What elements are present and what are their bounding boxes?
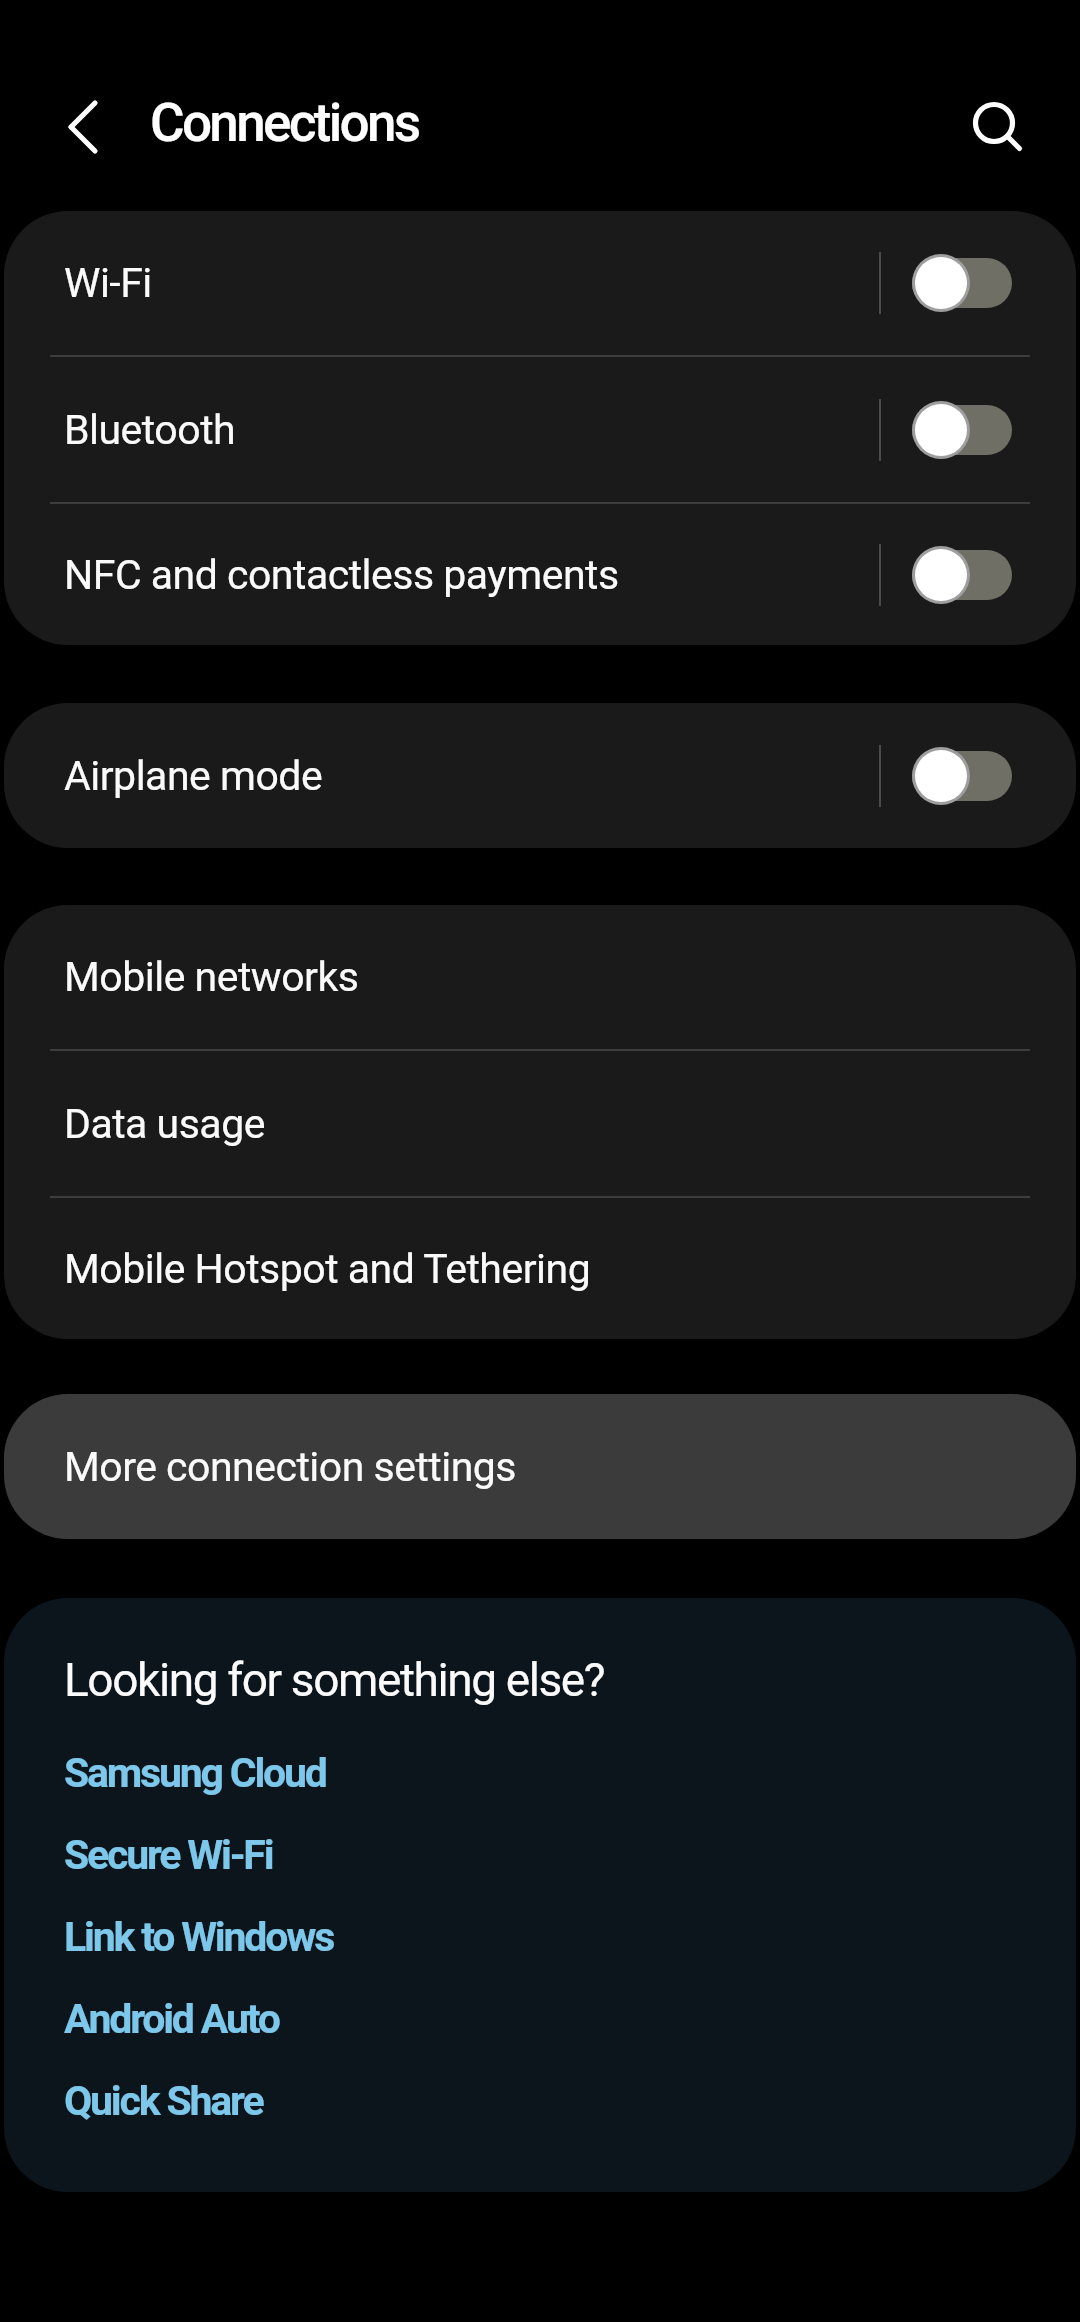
- button[interactable]: NFC and contactless payments: [4, 504, 1076, 645]
- staticText: Bluetooth: [64, 406, 236, 454]
- staticText: More connection settings: [64, 1443, 517, 1491]
- staticText: Connections: [150, 92, 419, 154]
- button[interactable]: [912, 401, 1012, 459]
- staticText: Mobile networks: [64, 953, 359, 1001]
- button[interactable]: Bluetooth: [4, 357, 1076, 502]
- staticText: Wi-Fi: [64, 259, 152, 307]
- staticText: Samsung Cloud: [64, 1749, 326, 1797]
- button[interactable]: Wi-Fi: [4, 211, 1076, 355]
- staticText: Android Auto: [64, 1995, 279, 2043]
- staticText: NFC and contactless payments: [64, 551, 619, 599]
- button[interactable]: Samsung Cloud: [4, 1732, 1076, 1814]
- button[interactable]: Secure Wi-Fi: [4, 1814, 1076, 1896]
- button[interactable]: Data usage: [4, 1051, 1076, 1196]
- staticText: Quick Share: [64, 2077, 263, 2125]
- staticText: Secure Wi-Fi: [64, 1831, 273, 1879]
- staticText: Link to Windows: [64, 1913, 334, 1961]
- button[interactable]: Android Auto: [4, 1978, 1076, 2060]
- button[interactable]: Airplane mode: [4, 703, 1076, 848]
- button[interactable]: Mobile Hotspot and Tethering: [4, 1198, 1076, 1339]
- button[interactable]: Mobile networks: [4, 905, 1076, 1049]
- button[interactable]: [912, 546, 1012, 604]
- staticText: Mobile Hotspot and Tethering: [64, 1245, 591, 1293]
- staticText: Data usage: [64, 1100, 265, 1148]
- button[interactable]: Link to Windows: [4, 1896, 1076, 1978]
- button[interactable]: [912, 747, 1012, 805]
- button[interactable]: [912, 254, 1012, 312]
- button[interactable]: [44, 87, 124, 167]
- staticText: Airplane mode: [64, 752, 323, 800]
- button[interactable]: More connection settings: [4, 1394, 1076, 1539]
- staticText: Looking for something else?: [64, 1653, 605, 1707]
- button[interactable]: [955, 85, 1039, 169]
- button[interactable]: Quick Share: [4, 2060, 1076, 2142]
